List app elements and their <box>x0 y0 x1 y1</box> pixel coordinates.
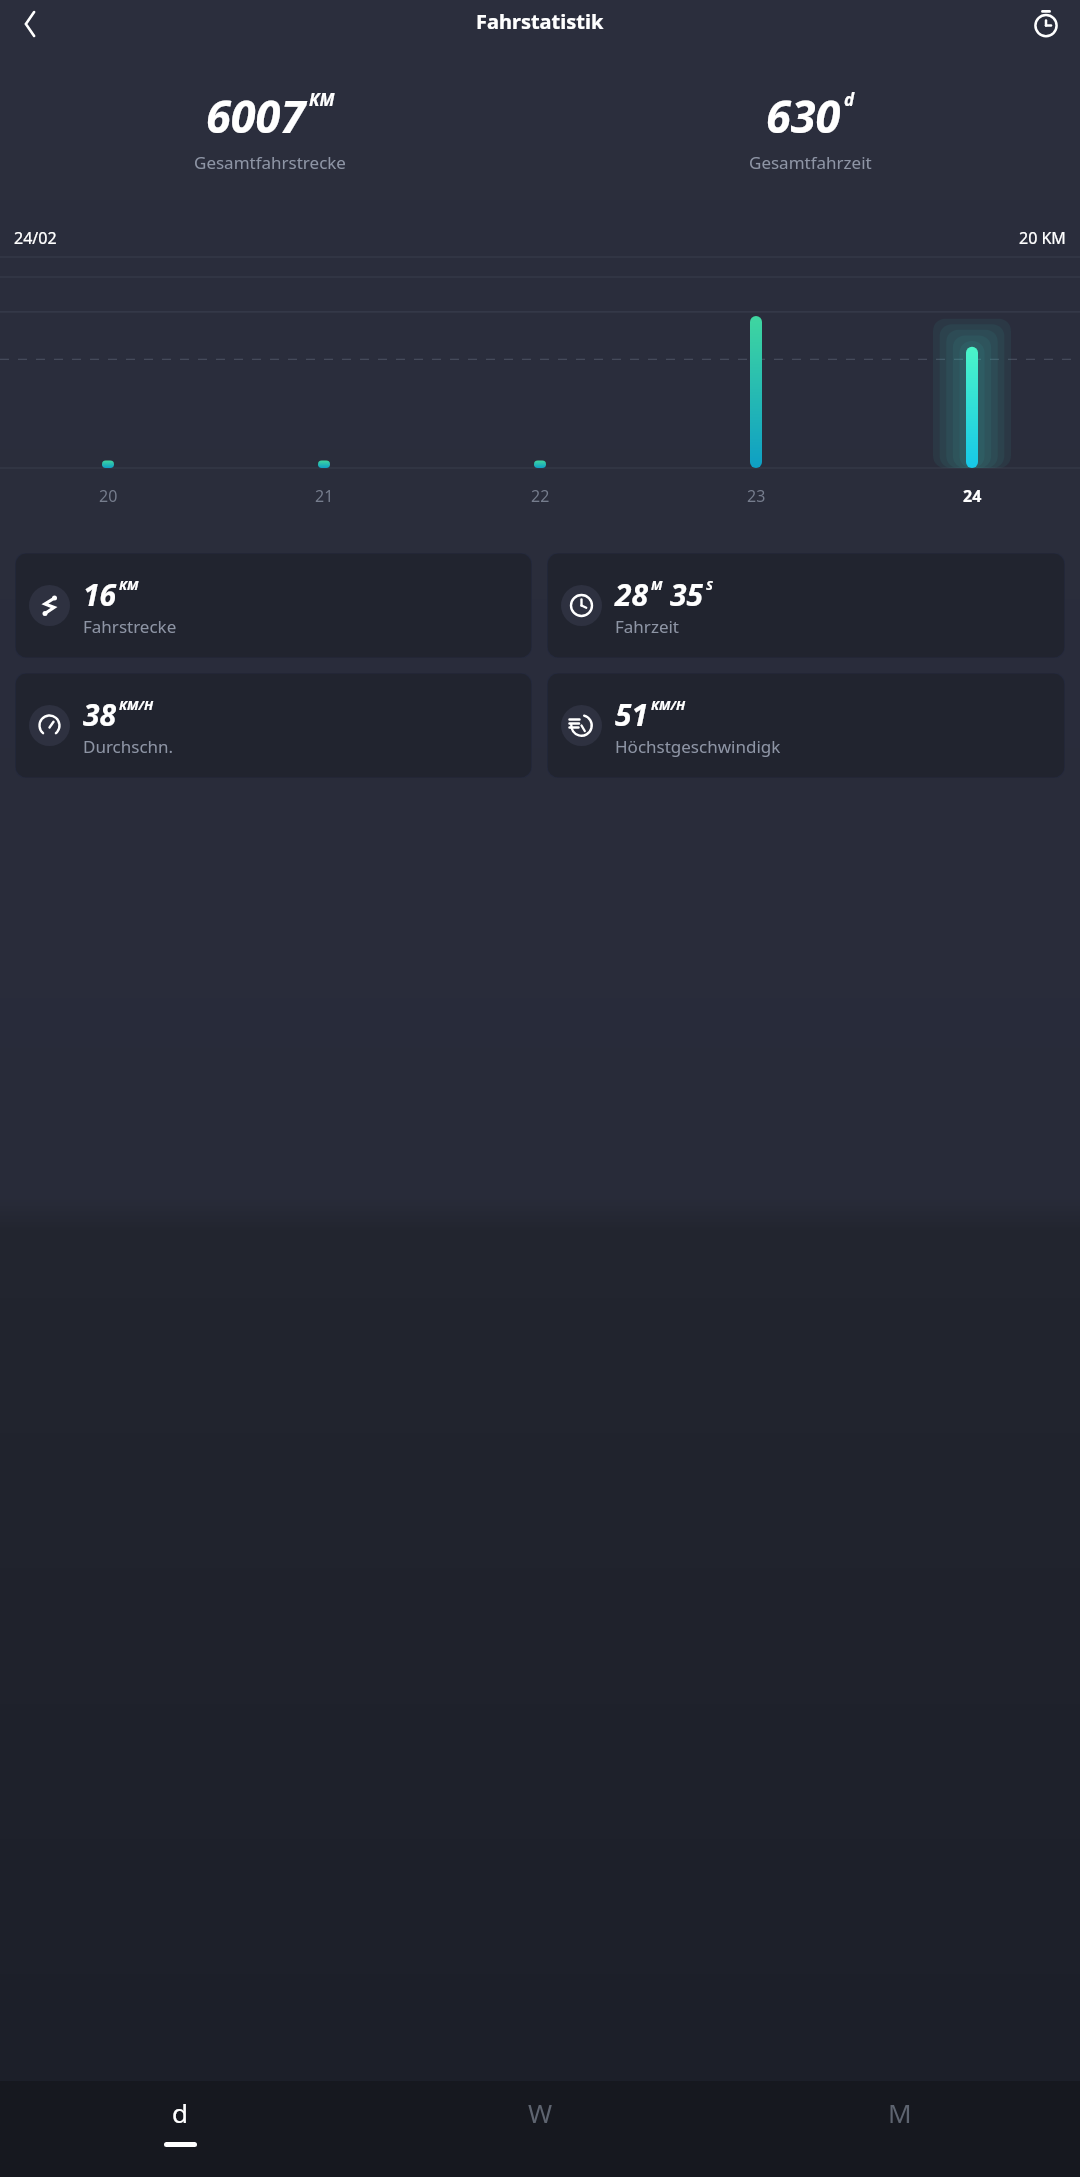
staticText: 38 <box>83 694 117 735</box>
staticText: Durchschn. <box>83 735 174 758</box>
button[interactable]: 51 <box>547 673 1065 778</box>
button[interactable]: 22 <box>531 485 550 507</box>
button[interactable]: 38 <box>15 673 532 778</box>
staticText: Fahrstatistik <box>476 8 604 35</box>
button[interactable]: d <box>0 2081 360 2177</box>
staticText: KM/H <box>651 696 686 714</box>
button[interactable]: 16 <box>15 553 532 658</box>
button[interactable]: M <box>720 2081 1080 2177</box>
button[interactable]: Stopwatch <box>1026 4 1066 44</box>
staticText: 20 KM <box>1019 227 1066 249</box>
button[interactable]: 28 <box>547 553 1065 658</box>
staticText: KM/H <box>119 696 154 714</box>
staticText: M <box>651 576 663 594</box>
staticText: Fahrstrecke <box>83 615 177 638</box>
staticText: 51 <box>615 694 649 735</box>
staticText: KM <box>309 88 335 111</box>
staticText: KM <box>119 576 139 594</box>
staticText: 16 <box>83 574 117 615</box>
staticText: 630 <box>766 85 841 146</box>
button[interactable]: 24 <box>963 485 982 507</box>
staticText: 6007 <box>206 85 306 146</box>
staticText: 24/02 <box>14 227 57 249</box>
staticText: d <box>172 2095 188 2130</box>
button[interactable]: 23 <box>747 485 766 507</box>
button[interactable]: Back <box>8 2 52 46</box>
staticText: Höchstgeschwindigk <box>615 735 781 758</box>
staticText: 28 <box>615 574 649 615</box>
staticText: Fahrzeit <box>615 615 679 638</box>
button[interactable]: 20 <box>99 485 118 507</box>
staticText: M <box>888 2095 912 2130</box>
staticText: Gesamtfahrstrecke <box>194 151 346 174</box>
staticText: W <box>528 2095 553 2130</box>
staticText: Gesamtfahrzeit <box>749 151 872 174</box>
staticText: 35 <box>670 574 704 615</box>
staticText: d <box>844 88 855 111</box>
button[interactable]: 21 <box>315 485 334 507</box>
staticText: S <box>706 576 713 594</box>
button[interactable]: W <box>360 2081 720 2177</box>
